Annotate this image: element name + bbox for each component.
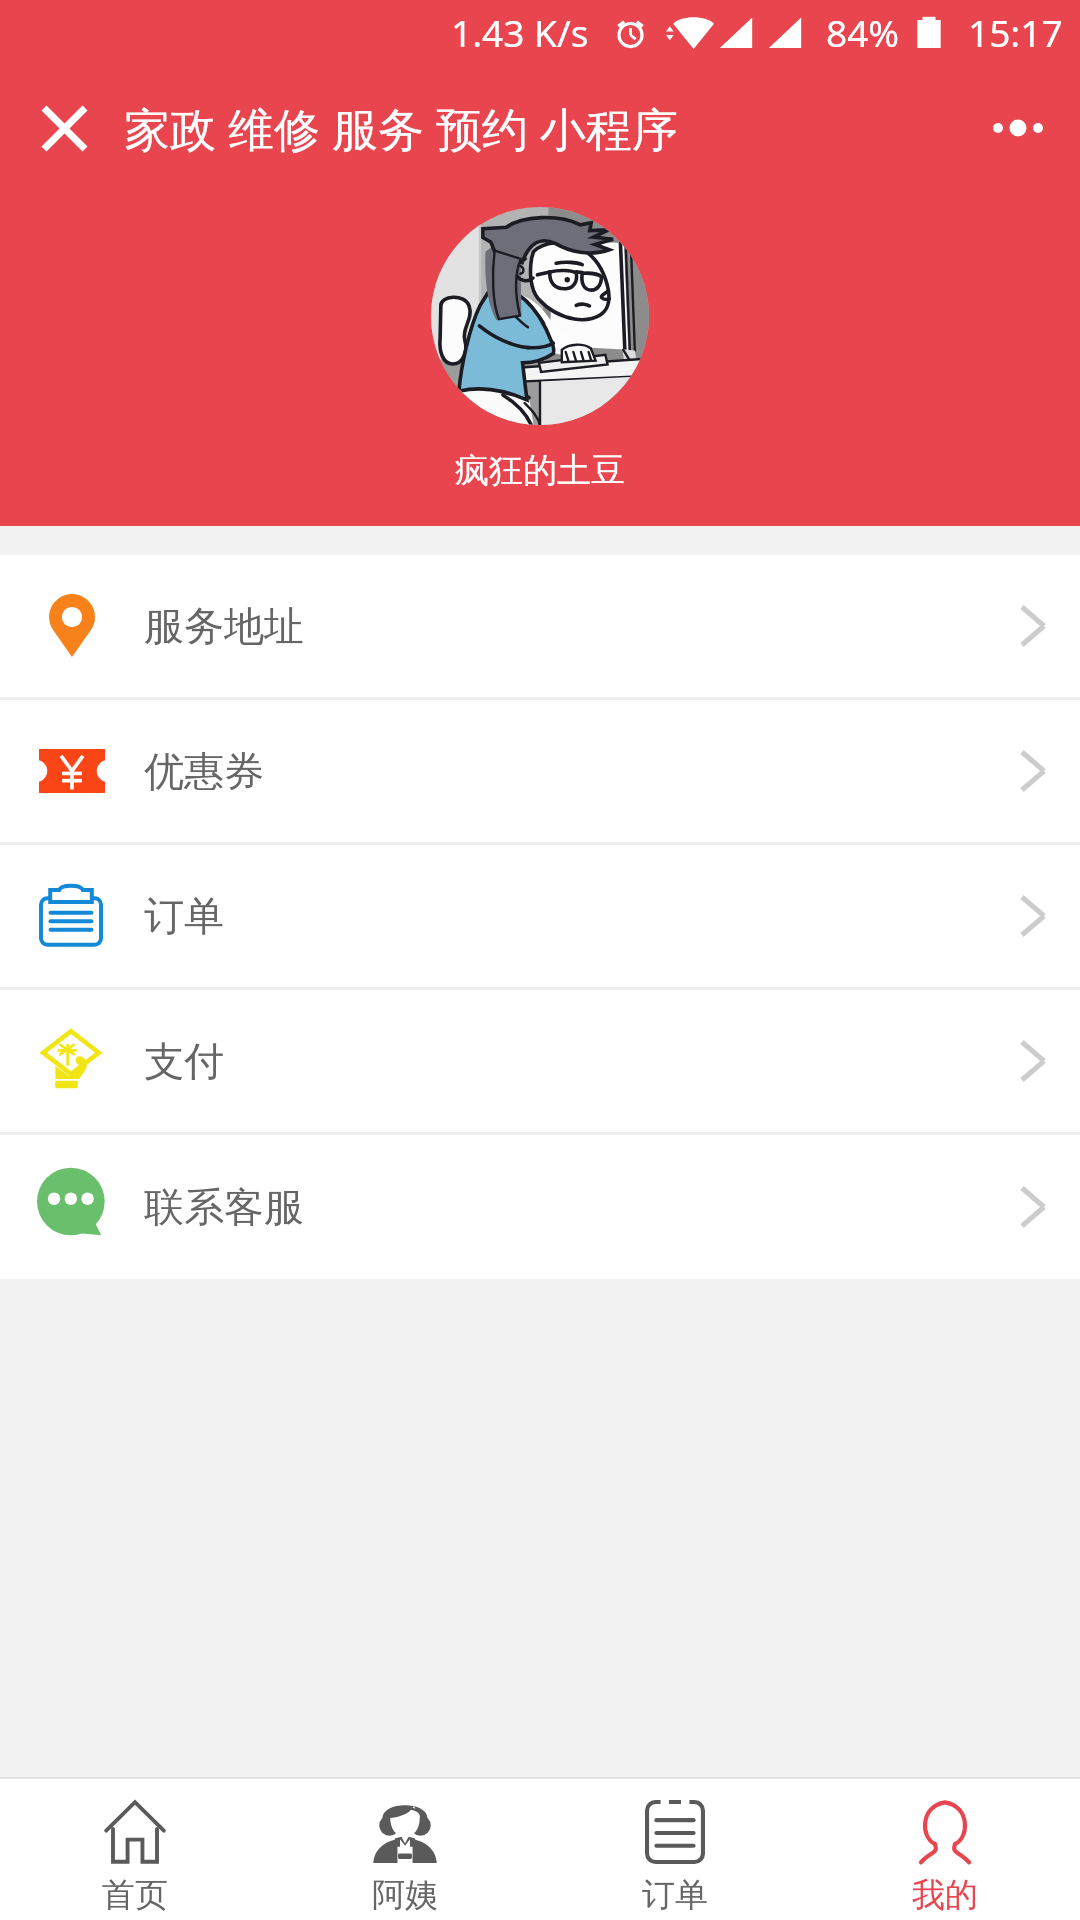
button[interactable]: 订单 [0,845,1080,990]
staticText: 优惠券 [144,746,264,796]
button[interactable]: 优惠券 [0,700,1080,845]
button[interactable]: 订单 [540,1779,810,1920]
staticText: 联系客服 [144,1182,304,1232]
button[interactable]: Close [28,92,100,164]
staticText: 服务地址 [144,601,304,651]
button[interactable]: More options [982,92,1054,164]
button[interactable]: 阿姨 [270,1779,540,1920]
staticText: 首页 [102,1874,168,1916]
button[interactable]: 服务地址 [0,555,1080,700]
button[interactable]: 联系客服 [0,1135,1080,1279]
staticText: 我的 [912,1874,978,1916]
button[interactable]: 我的 [810,1779,1080,1920]
staticText: 订单 [642,1874,708,1916]
staticText: 订单 [144,891,224,941]
staticText: 疯狂的土豆 [455,449,625,492]
staticText: 84% [826,7,900,57]
staticText: 1.43 K/s [451,7,589,57]
button[interactable]: 首页 [0,1779,270,1920]
staticText: 支付 [144,1036,224,1086]
staticText: 家政 维修 服务 预约 小程序 [124,97,678,160]
staticText: 15:17 [968,7,1063,57]
staticText: 阿姨 [372,1874,438,1916]
button[interactable]: 支付 [0,990,1080,1135]
